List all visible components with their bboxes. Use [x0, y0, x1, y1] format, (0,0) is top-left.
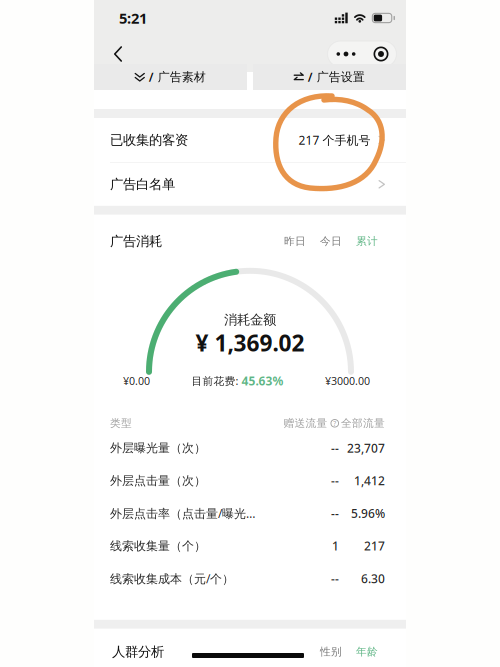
staticText: 6.30 — [361, 570, 385, 586]
button[interactable]: 今日 — [313, 230, 349, 253]
staticText: -- — [331, 570, 339, 586]
staticText: ¥3000.00 — [325, 374, 370, 388]
button[interactable]: 广告白名单 — [94, 163, 406, 206]
staticText: 5.96% — [351, 505, 385, 521]
staticText: 消耗金额 — [224, 312, 276, 328]
staticText: 外层点击量（次） — [110, 473, 206, 488]
staticText: ¥ 1,369.02 — [195, 328, 304, 358]
staticText: -- — [331, 473, 339, 489]
staticText: 外层曝光量（次） — [110, 441, 206, 455]
staticText: 外层点击率（点击量/曝光… — [110, 505, 255, 521]
button[interactable]: / — [94, 64, 247, 90]
staticText: 今日 — [320, 235, 342, 248]
staticText: 赠送流量 — [283, 417, 327, 430]
staticText: 年龄 — [356, 645, 378, 658]
staticText: 类型 — [110, 417, 132, 430]
staticText: 全部流量 — [341, 417, 385, 430]
staticText: 广告白名单 — [110, 176, 175, 192]
button[interactable]: 已收集的客资 — [94, 118, 406, 162]
staticText: 人群分析 — [112, 644, 164, 660]
staticText: ¥0.00 — [123, 374, 150, 388]
staticText: 23,707 — [347, 440, 385, 456]
staticText: 线索收集成本（元/个） — [110, 570, 234, 586]
button[interactable]: 累计 — [349, 230, 378, 253]
staticText: 昨日 — [284, 235, 306, 248]
button[interactable]: 性别 — [313, 640, 349, 663]
staticText: -- — [331, 440, 339, 456]
button[interactable]: 昨日 — [277, 230, 313, 253]
staticText: 线索收集量（个） — [110, 538, 206, 553]
staticText: 目前花费: — [191, 374, 238, 388]
button[interactable]: More — [327, 40, 365, 67]
button[interactable]: Close — [365, 40, 397, 67]
staticText: ? — [333, 419, 336, 428]
staticText: 广告设置 — [317, 70, 365, 84]
staticText: 217 个手机号 — [298, 132, 370, 148]
staticText: / — [149, 69, 154, 85]
button[interactable]: Back — [102, 38, 134, 70]
staticText: 217 — [364, 538, 385, 554]
staticText: 已收集的客资 — [110, 132, 188, 148]
staticText: 累计 — [356, 235, 378, 248]
staticText: 45.63% — [241, 373, 283, 389]
staticText: 5:21 — [119, 8, 147, 28]
staticText: / — [308, 69, 313, 85]
staticText: 性别 — [320, 645, 342, 658]
staticText: 广告素材 — [158, 70, 206, 84]
button[interactable]: / — [253, 64, 406, 90]
button[interactable]: 年龄 — [349, 640, 378, 663]
staticText: 广告消耗 — [110, 233, 162, 249]
staticText: -- — [331, 505, 339, 521]
staticText: 1 — [332, 538, 339, 554]
staticText: 1,412 — [354, 473, 385, 489]
